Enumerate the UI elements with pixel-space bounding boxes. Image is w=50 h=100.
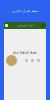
button[interactable]: Search bbox=[41, 23, 46, 28]
button[interactable]: Menu bbox=[4, 23, 9, 28]
staticText: Abu Bakr Al Shatri bbox=[13, 51, 37, 55]
staticText: مشغل القرآن الكريم bbox=[11, 9, 38, 13]
staticText: القراء المشاهير bbox=[17, 24, 33, 27]
